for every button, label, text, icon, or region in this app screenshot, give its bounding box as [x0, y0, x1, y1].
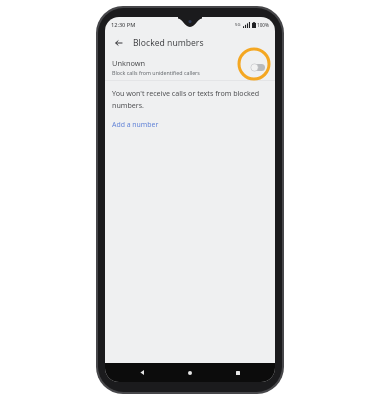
button[interactable]: Home — [179, 363, 201, 382]
button[interactable]: Add a number — [112, 120, 159, 129]
staticText: Unknown — [112, 58, 146, 68]
staticText: Add a number — [112, 120, 159, 129]
button[interactable]: Recent apps — [227, 363, 249, 382]
staticText: Block calls from unidentified callers — [112, 69, 200, 76]
button[interactable]: Back — [131, 363, 153, 382]
staticText: Blocked numbers — [133, 37, 204, 49]
staticText: 12:30 PM — [111, 21, 136, 29]
staticText: 5G — [235, 22, 241, 28]
button[interactable]: Unknown — [105, 53, 275, 80]
button[interactable]: Block unknown callers — [247, 59, 269, 75]
button[interactable]: Back — [111, 35, 127, 51]
staticText: You won't receive calls or texts from bl… — [112, 88, 264, 110]
staticText: 100% — [257, 22, 269, 28]
